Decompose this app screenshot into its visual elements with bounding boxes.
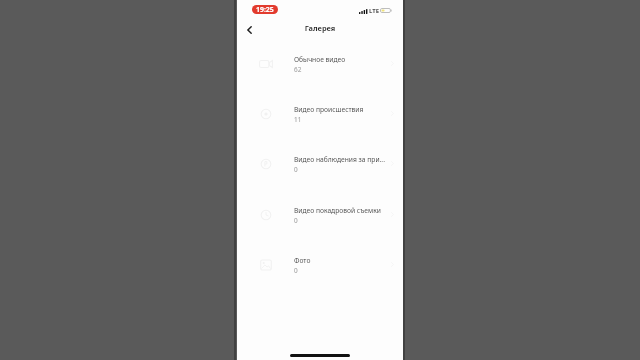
staticText: 11 xyxy=(294,115,302,124)
staticText: 0 xyxy=(294,266,298,275)
staticText: Галерея xyxy=(237,23,403,33)
button[interactable]: Видео наблюдения за при... xyxy=(237,145,403,195)
staticText: Видео наблюдения за при... xyxy=(294,155,394,164)
button[interactable]: Фото xyxy=(237,246,403,296)
staticText: Фото xyxy=(294,256,394,265)
button[interactable]: Видео происшествия xyxy=(237,95,403,145)
staticText: 19:25 xyxy=(256,5,274,14)
staticText: 0 xyxy=(294,165,298,174)
staticText: Видео происшествия xyxy=(294,105,394,114)
staticText: Обычное видео xyxy=(294,55,394,64)
staticText: 62 xyxy=(294,65,302,74)
button[interactable]: Видео покадровой съемки xyxy=(237,196,403,246)
staticText: Видео покадровой съемки xyxy=(294,206,394,215)
button[interactable]: Back xyxy=(239,20,259,40)
staticText: 0 xyxy=(294,216,298,225)
button[interactable]: Обычное видео xyxy=(237,45,403,95)
staticText: LTE xyxy=(369,7,380,15)
